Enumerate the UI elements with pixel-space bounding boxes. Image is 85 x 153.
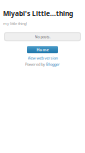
staticText: Home bbox=[36, 47, 48, 52]
staticText: Powered by bbox=[25, 61, 46, 67]
staticText: No posts. bbox=[34, 34, 50, 39]
staticText: View web version bbox=[27, 55, 57, 60]
button[interactable]: View web version bbox=[27, 55, 57, 60]
staticText: Blogger bbox=[46, 61, 60, 67]
staticText: Miyabi's Little...thing bbox=[3, 9, 73, 18]
button[interactable]: Home bbox=[27, 46, 58, 53]
button[interactable]: Blogger bbox=[46, 61, 60, 67]
staticText: my little thing! bbox=[3, 21, 27, 26]
